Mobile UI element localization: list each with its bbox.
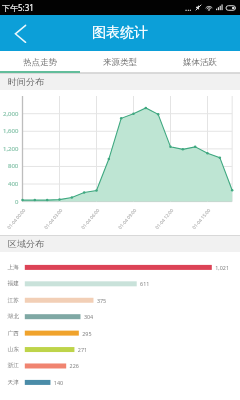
button[interactable] [0,256,240,272]
staticText: 热点走势 [23,57,57,68]
staticText: 时间分布 [8,76,44,87]
staticText: 来源类型 [103,57,137,68]
button[interactable]: 来源类型 [80,51,160,73]
staticText: 图表统计 [92,24,148,42]
button[interactable] [0,336,240,352]
button[interactable]: 媒体活跃 [160,51,240,73]
button[interactable] [0,368,240,384]
button[interactable] [0,304,240,320]
staticText: 下午5:31 [2,2,34,13]
button[interactable] [0,352,240,368]
button[interactable]: Back [0,15,38,51]
button[interactable] [0,272,240,288]
button[interactable]: 热点走势 [0,51,80,73]
staticText: ... [185,2,192,13]
button[interactable] [0,320,240,336]
button[interactable] [0,288,240,304]
staticText: 区域分布 [8,238,44,249]
staticText: 媒体活跃 [183,57,217,68]
